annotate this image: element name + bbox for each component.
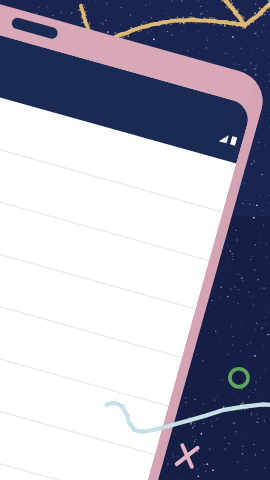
button[interactable]: Notes app illustration (0, 0, 270, 480)
